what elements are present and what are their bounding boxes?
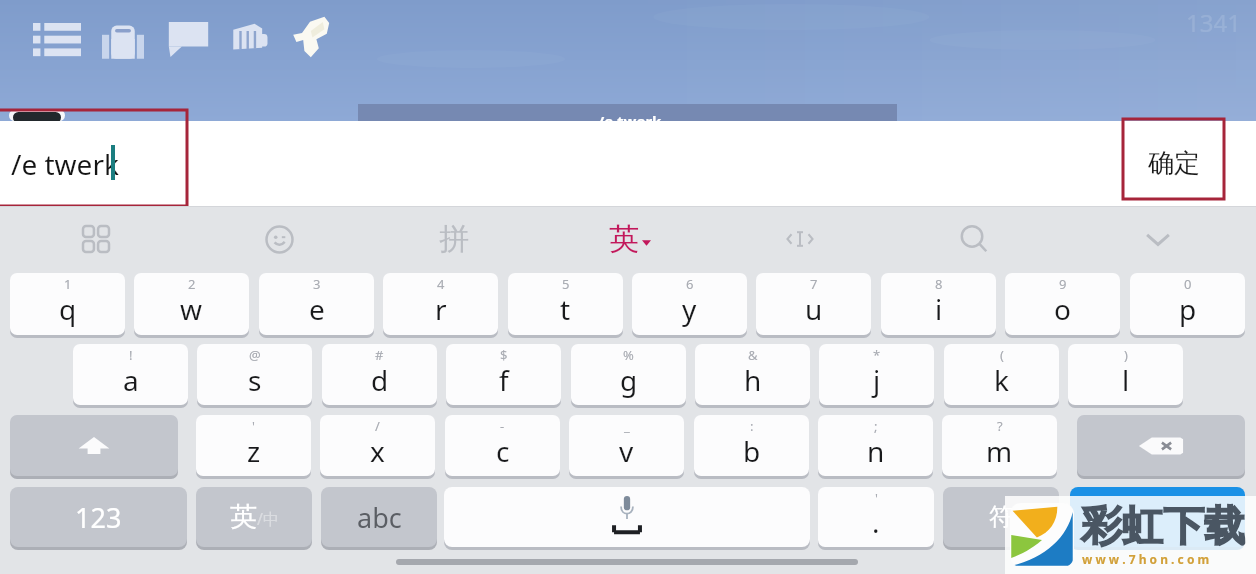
button[interactable]: 4 — [383, 273, 498, 335]
button[interactable]: # — [322, 344, 437, 405]
button[interactable]: ? — [942, 415, 1057, 476]
button[interactable]: tool0 — [68, 211, 124, 267]
button[interactable]: Shift — [10, 415, 178, 476]
staticText: n — [867, 432, 885, 470]
button[interactable]: Quests — [33, 23, 81, 56]
button[interactable]: 1 — [10, 273, 125, 335]
staticText: k — [994, 361, 1009, 399]
staticText: 3 — [313, 275, 321, 293]
button[interactable]: tool4 — [772, 211, 828, 267]
staticText: b — [743, 432, 761, 470]
staticText: g — [620, 361, 638, 399]
staticText: w w w . 7 h o n . c o m — [1082, 551, 1210, 567]
staticText: /e twerk — [598, 111, 662, 128]
button[interactable]: _ — [569, 415, 684, 476]
staticText: @ — [249, 346, 261, 364]
button[interactable]: 0 — [1130, 273, 1245, 335]
staticText: f — [499, 361, 509, 399]
button[interactable]: : — [694, 415, 809, 476]
button[interactable]: 2 — [134, 273, 249, 335]
staticText: 8 — [935, 275, 943, 293]
staticText: m — [986, 432, 1013, 470]
button[interactable]: * — [819, 344, 934, 405]
staticText: _ — [624, 417, 630, 435]
staticText: e — [309, 290, 325, 328]
button[interactable]: % — [571, 344, 686, 405]
staticText: 123 — [75, 499, 122, 536]
button[interactable]: Fight — [231, 22, 269, 52]
staticText: abc — [357, 499, 402, 536]
button[interactable]: 5 — [508, 273, 623, 335]
staticText: 确定 — [1148, 147, 1200, 180]
staticText: ; — [874, 417, 878, 435]
staticText: 符 — [989, 502, 1013, 532]
staticText: 9 — [1059, 275, 1067, 293]
staticText: ' — [252, 417, 255, 435]
button[interactable]: Chat — [168, 22, 209, 57]
button[interactable]: Enter — [1070, 487, 1245, 547]
button[interactable]: ' — [818, 487, 934, 547]
staticText: r — [435, 290, 447, 328]
button[interactable]: 6 — [632, 273, 747, 335]
button[interactable]: - — [445, 415, 560, 476]
staticText: ! — [129, 346, 133, 364]
staticText: 1 — [64, 275, 72, 293]
button[interactable]: 符 — [943, 487, 1059, 547]
staticText: y — [682, 290, 697, 328]
button[interactable]: 8 — [881, 273, 996, 335]
button[interactable]: 9 — [1005, 273, 1120, 335]
staticText: a — [123, 361, 139, 399]
button[interactable]: ) — [1068, 344, 1183, 405]
staticText: p — [1179, 290, 1197, 328]
button[interactable]: @ — [197, 344, 312, 405]
staticText: 7 — [810, 275, 818, 293]
button[interactable]: tool1 — [251, 211, 307, 267]
staticText: w — [180, 290, 203, 328]
button[interactable]: Fly — [290, 14, 330, 59]
staticText: 1341 — [1186, 6, 1241, 39]
button[interactable]: ! — [73, 344, 188, 405]
button[interactable]: tool5 — [946, 211, 1002, 267]
staticText: d — [371, 361, 389, 399]
button[interactable]: 123 — [10, 487, 187, 547]
staticText: : — [750, 417, 754, 435]
button[interactable]: Space — [444, 487, 810, 547]
staticText: - — [500, 417, 505, 435]
button[interactable]: tool3 — [602, 211, 658, 267]
staticText: 彩虹下载 — [1081, 501, 1245, 553]
staticText: u — [805, 290, 823, 328]
button[interactable]: ' — [196, 415, 311, 476]
button[interactable]: Switch language — [196, 487, 312, 547]
button[interactable]: Bag — [102, 18, 144, 60]
staticText: /e twerk — [11, 145, 119, 183]
staticText: 英 — [230, 500, 257, 534]
staticText: 5 — [562, 275, 570, 293]
staticText: / — [375, 417, 380, 435]
staticText: & — [748, 346, 758, 364]
button[interactable]: 确定 — [1125, 121, 1223, 206]
button[interactable]: ( — [944, 344, 1059, 405]
staticText: x — [370, 432, 385, 470]
button[interactable]: 7 — [756, 273, 871, 335]
button[interactable]: Backspace — [1077, 415, 1245, 476]
button[interactable]: & — [695, 344, 810, 405]
staticText: ? — [997, 417, 1003, 435]
staticText: c — [496, 432, 510, 470]
button[interactable]: / — [320, 415, 435, 476]
staticText: 4 — [437, 275, 445, 293]
staticText: z — [247, 432, 261, 470]
button[interactable]: $ — [446, 344, 561, 405]
staticText: * — [873, 346, 881, 364]
button[interactable]: tool2 — [426, 211, 482, 267]
button[interactable]: 3 — [259, 273, 374, 335]
button[interactable]: tool6 — [1130, 211, 1186, 267]
staticText: t — [560, 290, 571, 328]
staticText: . — [872, 503, 880, 541]
staticText: 0 — [1184, 275, 1192, 293]
button[interactable]: ; — [818, 415, 933, 476]
button[interactable]: abc — [321, 487, 437, 547]
staticText: ) — [1124, 346, 1128, 364]
staticText: ( — [1000, 346, 1004, 364]
staticText: l — [1122, 361, 1130, 399]
staticText: i — [935, 290, 943, 328]
